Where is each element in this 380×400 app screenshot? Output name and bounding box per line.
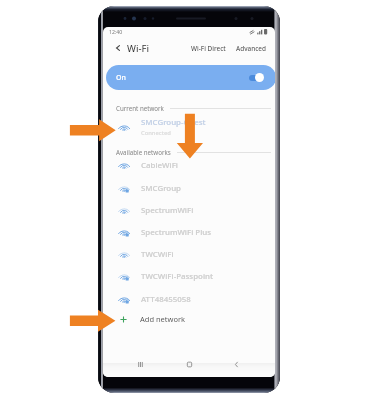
button[interactable]: Advanced (236, 44, 266, 53)
button[interactable]: SpectrumWiFi (118, 199, 275, 221)
staticText: Available networks (116, 148, 171, 156)
button[interactable]: ATT48455058 (118, 288, 275, 310)
staticText: CableWiFi (141, 160, 178, 171)
staticText: Connected (141, 129, 171, 137)
staticText: SMCGroup-Guest (141, 117, 206, 128)
staticText: SMCGroup (141, 183, 182, 194)
button[interactable]: Add network (118, 308, 275, 330)
staticText: SpectrumWiFi Plus (141, 227, 212, 238)
staticText: ATT48455058 (141, 294, 191, 305)
staticText: Add network (140, 314, 186, 324)
staticText: TWCWiFi-Passpoint (141, 271, 213, 282)
button[interactable]: Recents (130, 354, 150, 374)
button[interactable]: SMCGroup (118, 177, 275, 199)
button[interactable]: Home (179, 354, 199, 374)
staticText: SpectrumWiFi (141, 205, 194, 216)
button[interactable]: Back (112, 42, 124, 54)
button[interactable]: TWCWiFi (118, 243, 275, 265)
staticText: Wi-Fi (127, 42, 150, 55)
button[interactable]: CableWiFi (118, 154, 275, 176)
button[interactable]: SpectrumWiFi Plus (118, 221, 275, 243)
button[interactable]: Back (226, 354, 246, 374)
staticText: 12:40 (109, 28, 123, 35)
button[interactable]: SMCGroup-Guest (118, 116, 275, 138)
staticText: Current network (116, 104, 164, 112)
staticText: On (116, 73, 126, 83)
button[interactable]: Wi-Fi Direct (191, 44, 226, 53)
button[interactable]: On (106, 65, 275, 90)
staticText: TWCWiFi (141, 249, 174, 260)
button[interactable]: TWCWiFi-Passpoint (118, 265, 275, 287)
